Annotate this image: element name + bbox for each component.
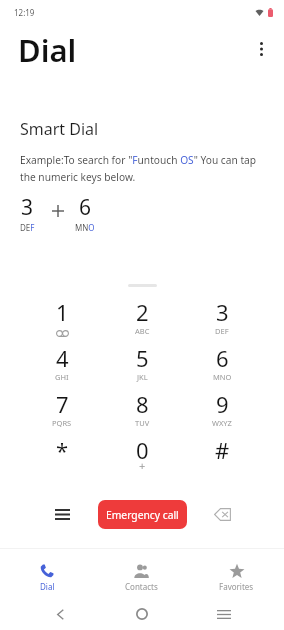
staticText: 5 xyxy=(136,343,149,373)
button[interactable]: 6 xyxy=(182,344,262,390)
staticText: 1 xyxy=(56,297,69,327)
staticText: PQRS xyxy=(52,418,72,428)
button[interactable]: 8 xyxy=(102,390,182,436)
staticText: GHI xyxy=(55,372,69,382)
button[interactable]: 9 xyxy=(182,390,262,436)
button[interactable]: Dial xyxy=(0,549,94,598)
button[interactable]: 0 xyxy=(102,436,182,482)
button[interactable]: 3 xyxy=(182,298,262,344)
staticText: 12:19 xyxy=(14,7,35,18)
staticText: Example:To search for "Funtouch OS" You … xyxy=(20,153,268,184)
staticText: 7 xyxy=(56,389,69,419)
staticText: 4 xyxy=(56,343,69,373)
staticText: DEF xyxy=(215,326,229,336)
button[interactable]: Backspace xyxy=(204,497,240,531)
staticText: 3 xyxy=(21,193,34,222)
button[interactable]: 5 xyxy=(102,344,182,390)
button[interactable]: Back xyxy=(42,598,78,630)
button[interactable]: Contacts xyxy=(94,549,189,598)
staticText: 9 xyxy=(216,389,229,419)
staticText: JKL xyxy=(137,372,148,382)
button[interactable]: Home xyxy=(124,598,160,630)
staticText: Emergency call xyxy=(106,508,179,522)
staticText: Smart Dial xyxy=(20,118,99,140)
staticText: * xyxy=(56,435,69,465)
staticText: 2 xyxy=(136,297,149,327)
button[interactable]: Dial menu xyxy=(44,497,80,531)
staticText: Dial xyxy=(40,581,55,592)
staticText: MNO xyxy=(75,222,95,233)
staticText: 6 xyxy=(79,193,92,222)
staticText: 3 xyxy=(216,297,229,327)
button[interactable]: 7 xyxy=(22,390,102,436)
button[interactable]: More options xyxy=(244,32,278,66)
button[interactable]: # xyxy=(182,436,262,482)
staticText: + xyxy=(139,458,146,473)
staticText: TUV xyxy=(135,418,150,428)
staticText: Contacts xyxy=(125,581,158,592)
staticText: 8 xyxy=(136,389,149,419)
staticText: # xyxy=(215,435,230,465)
staticText: Favorites xyxy=(219,581,254,592)
button[interactable]: Emergency call xyxy=(98,500,187,529)
button[interactable]: Recent apps xyxy=(206,598,242,630)
button[interactable]: 2 xyxy=(102,298,182,344)
staticText: ABC xyxy=(135,326,150,336)
button[interactable]: 4 xyxy=(22,344,102,390)
staticText: MNO xyxy=(213,372,232,382)
staticText: 6 xyxy=(216,343,229,373)
staticText: Dial xyxy=(18,29,77,71)
staticText: WXYZ xyxy=(212,418,232,428)
staticText: 0 xyxy=(136,435,149,465)
button[interactable]: 1 xyxy=(22,298,102,344)
button[interactable]: * xyxy=(22,436,102,482)
staticText: DEF xyxy=(20,222,35,233)
button[interactable]: Favorites xyxy=(189,549,284,598)
